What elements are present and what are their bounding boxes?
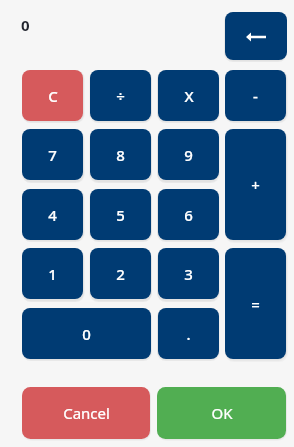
button[interactable]: 2 <box>90 248 151 299</box>
button[interactable]: - <box>225 70 286 121</box>
staticText: Cancel <box>63 403 110 423</box>
staticText: + <box>251 175 260 195</box>
staticText: 5 <box>116 205 125 225</box>
button[interactable]: . <box>158 308 219 359</box>
button[interactable]: 5 <box>90 189 151 240</box>
staticText: OK <box>211 403 233 423</box>
button[interactable]: 4 <box>22 189 83 240</box>
button[interactable]: 1 <box>22 248 83 299</box>
staticText: - <box>253 86 258 106</box>
button[interactable]: Cancel <box>22 387 150 439</box>
button[interactable]: 9 <box>158 129 219 180</box>
staticText: 2 <box>116 264 125 284</box>
button[interactable]: + <box>225 129 286 240</box>
button[interactable]: Backspace <box>225 12 287 60</box>
button[interactable]: 3 <box>158 248 219 299</box>
staticText: 3 <box>184 264 193 284</box>
button[interactable]: 0 <box>22 308 151 359</box>
staticText: = <box>251 294 260 314</box>
button[interactable]: 8 <box>90 129 151 180</box>
button[interactable]: ÷ <box>90 70 151 121</box>
staticText: 4 <box>48 205 57 225</box>
button[interactable]: 7 <box>22 129 83 180</box>
button[interactable]: = <box>225 248 286 359</box>
button[interactable]: X <box>158 70 219 121</box>
staticText: 8 <box>116 145 125 165</box>
button[interactable]: 6 <box>158 189 219 240</box>
staticText: 9 <box>184 145 193 165</box>
staticText: 7 <box>48 145 57 165</box>
button[interactable]: OK <box>157 387 286 439</box>
staticText: 0 <box>21 15 30 35</box>
staticText: C <box>48 86 58 106</box>
staticText: . <box>186 324 191 344</box>
staticText: 6 <box>184 205 193 225</box>
button[interactable]: C <box>22 70 83 121</box>
staticText: 1 <box>48 264 57 284</box>
staticText: X <box>184 86 194 106</box>
staticText: 0 <box>82 324 91 344</box>
staticText: ÷ <box>116 86 125 106</box>
